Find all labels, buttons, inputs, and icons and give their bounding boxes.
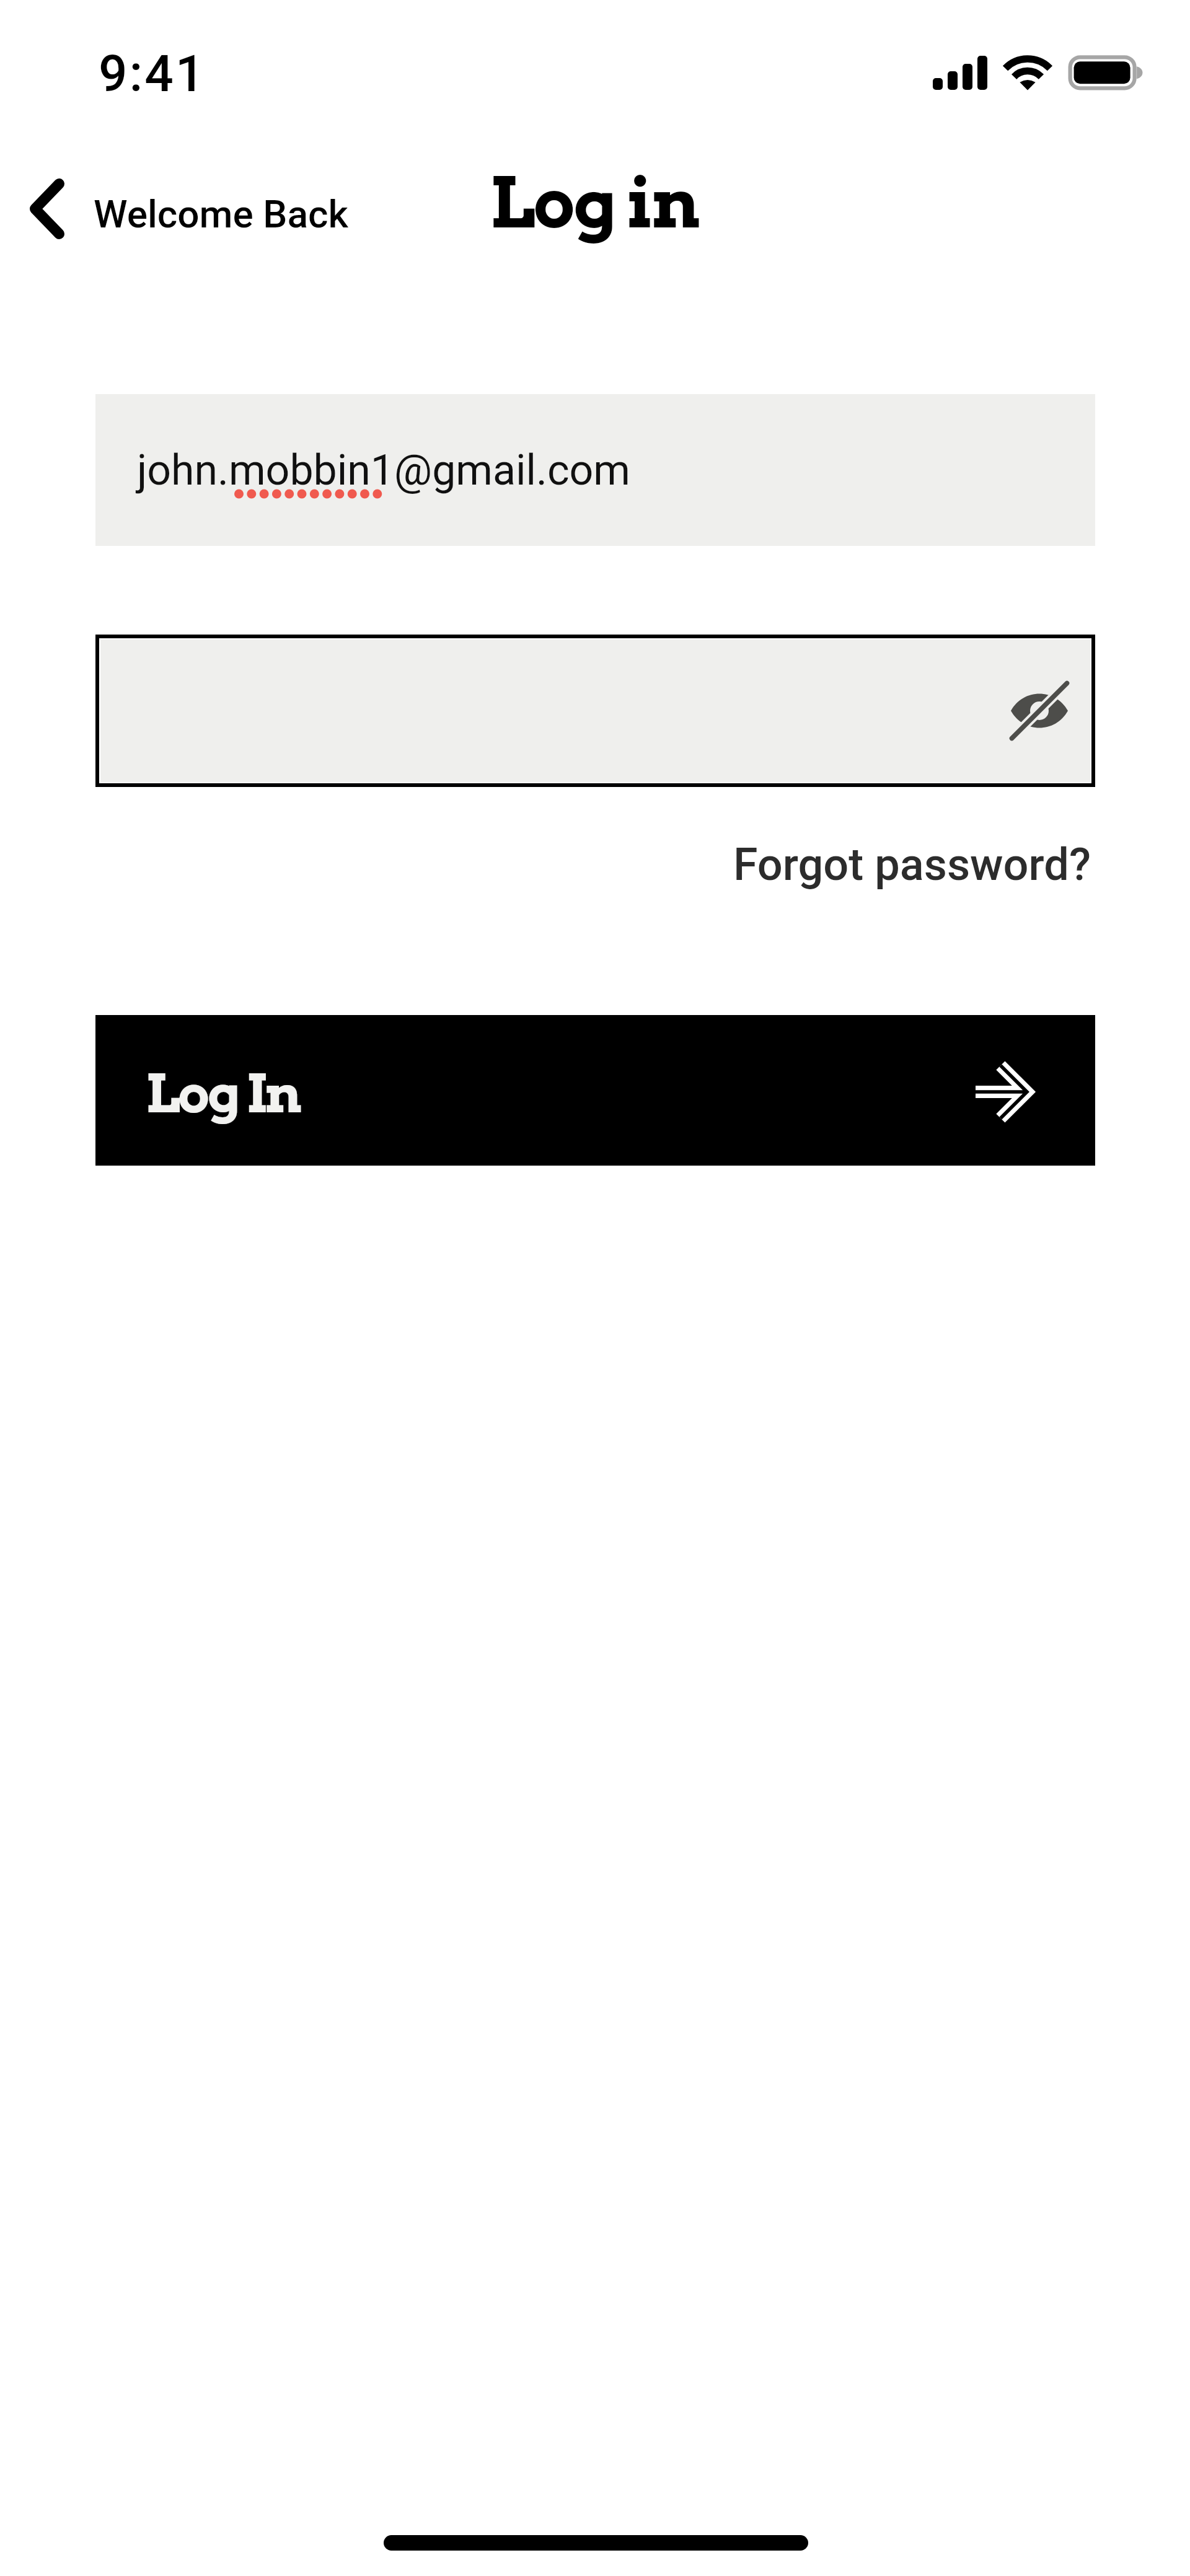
staticText: Log In [146,1062,300,1125]
staticText: Log in [490,160,699,244]
button[interactable]: Log In [95,1015,1095,1166]
button[interactable]: Hide password [997,670,1081,752]
staticText: 9:41 [99,44,206,103]
button[interactable]: Hide password [95,635,1095,787]
button[interactable]: john.mobbin1@gmail.com [95,394,1095,546]
button[interactable]: Back [12,174,359,248]
button[interactable]: Forgot password? [716,824,1113,905]
staticText: Forgot password? [733,838,1091,890]
staticText: john.mobbin1@gmail.com [137,446,630,495]
staticText: Welcome Back [94,191,348,237]
other: Back [30,178,65,240]
